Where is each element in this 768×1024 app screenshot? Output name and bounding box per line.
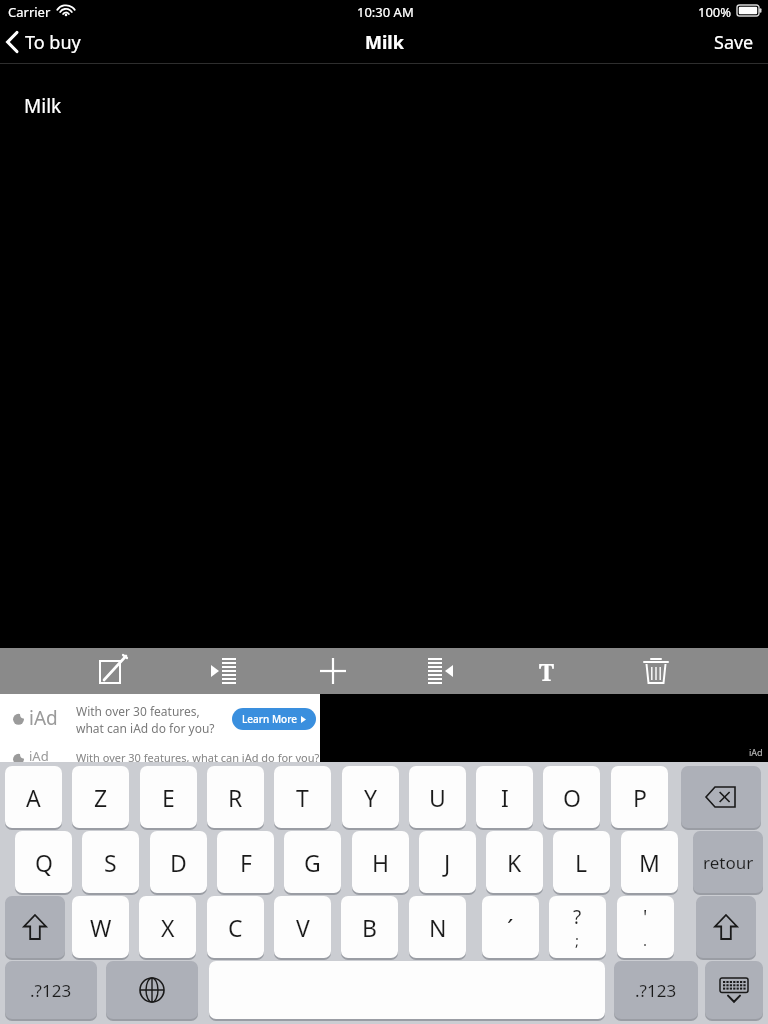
staticText: T [296, 782, 309, 813]
staticText: F [240, 847, 252, 878]
staticText: C [228, 912, 243, 943]
staticText: With over 30 features, what can iAd do f… [76, 750, 320, 765]
staticText: Milk [24, 93, 62, 119]
button[interactable]: O [543, 766, 600, 828]
staticText: Y [364, 782, 378, 813]
button[interactable]: retour [693, 831, 763, 893]
button[interactable]: Shift [5, 896, 65, 958]
staticText: G [304, 847, 321, 878]
staticText: To buy [25, 30, 81, 55]
staticText: retour [703, 851, 754, 874]
staticText: H [372, 847, 390, 878]
staticText: P [633, 782, 647, 813]
button[interactable]: X [139, 896, 196, 958]
button[interactable]: E [140, 766, 197, 828]
button[interactable]: H [352, 831, 409, 893]
button[interactable]: G [284, 831, 341, 893]
staticText: Save [714, 30, 754, 55]
button[interactable]: L [553, 831, 610, 893]
staticText: I [501, 782, 509, 813]
button[interactable]: To buy [0, 20, 91, 64]
button[interactable]: B [341, 896, 398, 958]
button[interactable]: .?123 [614, 961, 698, 1019]
staticText: ´ [507, 912, 514, 943]
button[interactable]: M [621, 831, 678, 893]
staticText: Milk [365, 30, 404, 55]
staticText: S [104, 847, 117, 878]
staticText: 10:30 AM [357, 3, 414, 21]
staticText: iAd [29, 747, 49, 765]
button[interactable]: Y [342, 766, 399, 828]
staticText: 100% [698, 3, 732, 21]
button[interactable]: ' . [617, 896, 674, 958]
button[interactable]: C [207, 896, 264, 958]
staticText: Z [94, 782, 108, 813]
staticText: Carrier [8, 3, 51, 21]
staticText: J [444, 847, 451, 878]
button[interactable]: ´ [482, 896, 539, 958]
button[interactable]: Hide keyboard [705, 961, 763, 1019]
button[interactable]: Shift [696, 896, 756, 958]
staticText: iAd [749, 746, 763, 758]
staticText: V [296, 912, 310, 943]
staticText: R [228, 782, 243, 813]
button[interactable]: I [476, 766, 533, 828]
staticText: W [90, 912, 112, 943]
staticText: .?123 [30, 979, 72, 1002]
button[interactable]: V [274, 896, 331, 958]
button[interactable]: N [409, 896, 466, 958]
staticText: B [362, 912, 377, 943]
staticText: what can iAd do for you? [76, 720, 215, 736]
button[interactable]: Z [72, 766, 129, 828]
button[interactable]: T [525, 648, 569, 694]
button[interactable]: Learn More [400, 747, 484, 767]
staticText: M [639, 847, 660, 878]
staticText: L [575, 847, 588, 878]
button[interactable]: Learn More [232, 708, 316, 730]
button[interactable]: P [611, 766, 668, 828]
staticText: X [161, 912, 175, 943]
button[interactable]: F [217, 831, 274, 893]
button[interactable]: T [274, 766, 331, 828]
staticText: With over 30 features, [76, 703, 200, 719]
staticText: .?123 [635, 979, 677, 1002]
button[interactable]: Delete [632, 648, 680, 694]
button[interactable]: A [5, 766, 62, 828]
button[interactable]: R [207, 766, 264, 828]
button[interactable]: ? ; [549, 896, 606, 958]
staticText: K [507, 847, 522, 878]
button[interactable]: Text style [523, 648, 571, 694]
staticText: Q [35, 847, 53, 878]
button[interactable]: K [486, 831, 543, 893]
button[interactable]: S [82, 831, 139, 893]
staticText: D [170, 847, 187, 878]
button[interactable]: D [150, 831, 207, 893]
button[interactable]: W [72, 896, 129, 958]
button[interactable]: Backspace [681, 766, 761, 828]
staticText: O [563, 782, 581, 813]
staticText: U [429, 782, 446, 813]
button[interactable]: Compose [88, 648, 136, 694]
button[interactable]: Q [15, 831, 72, 893]
staticText: Learn More [242, 712, 297, 726]
button[interactable]: U [409, 766, 466, 828]
button[interactable]: J [419, 831, 476, 893]
button[interactable]: Increase indent [416, 648, 464, 694]
staticText: ' [643, 904, 648, 930]
button[interactable]: Next keyboard [106, 961, 198, 1019]
staticText: iAd [29, 705, 58, 731]
staticText: T [539, 656, 555, 687]
staticText: N [429, 912, 447, 943]
button[interactable]: .?123 [5, 961, 97, 1019]
staticText: A [26, 782, 41, 813]
staticText: E [162, 782, 175, 813]
staticText: . [643, 930, 648, 950]
button[interactable]: Add [309, 648, 357, 694]
staticText: Learn More [410, 750, 465, 764]
button[interactable]: Save [700, 20, 768, 64]
button[interactable]: Decrease indent [200, 648, 248, 694]
staticText: ? [573, 904, 582, 930]
staticText: ; [575, 930, 580, 950]
